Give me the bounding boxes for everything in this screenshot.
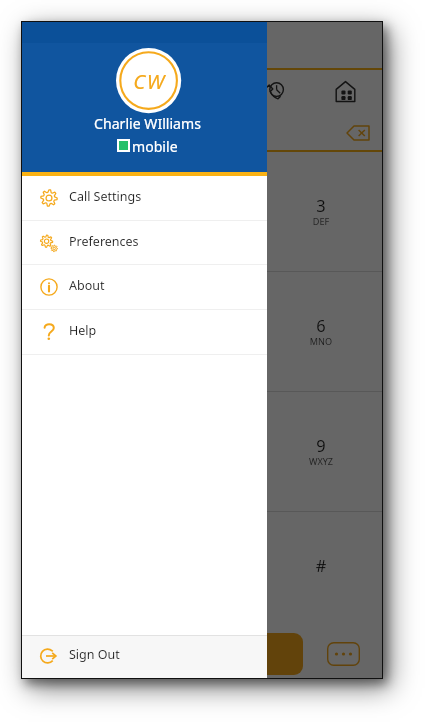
staticText: 4 (22, 314, 142, 336)
staticText: GHI (22, 335, 142, 347)
button[interactable]: Keypad (309, 70, 381, 112)
button[interactable]: Call Settings (22, 175, 267, 220)
staticText: MNO (261, 335, 381, 347)
staticText: Preferences (69, 233, 139, 250)
staticText: 9 (261, 434, 381, 456)
button[interactable]: 4 (22, 271, 142, 391)
staticText: 6 (261, 314, 381, 336)
staticText: Charlie WIlliams (25, 114, 270, 133)
staticText: DEF (261, 215, 381, 227)
staticText: ABC (142, 215, 262, 227)
button[interactable]: Favourites (94, 70, 166, 112)
staticText: Help (69, 322, 97, 339)
staticText: About (69, 277, 105, 294)
button[interactable]: Add contact (44, 642, 77, 666)
button[interactable]: # (261, 511, 381, 631)
button[interactable]: Backspace (340, 121, 376, 144)
staticText: 3 (261, 194, 381, 216)
button[interactable]: 9 (261, 391, 381, 511)
button[interactable]: 2 (142, 151, 262, 271)
staticText: Sign Out (69, 646, 120, 663)
button[interactable]: Help (22, 309, 267, 354)
button[interactable]: Recent calls (238, 70, 310, 112)
staticText: 1 (22, 194, 142, 216)
button[interactable]: Preferences (22, 220, 267, 265)
staticText: # (261, 554, 381, 576)
button[interactable]: Call (100, 633, 303, 675)
button[interactable]: 1 (22, 151, 142, 271)
button[interactable]: 6 (261, 271, 381, 391)
button[interactable]: About (22, 264, 267, 309)
staticText: CW (117, 67, 182, 95)
button[interactable]: Groups (166, 70, 238, 112)
staticText: Call Settings (69, 188, 142, 205)
button[interactable]: Sign Out (22, 636, 267, 678)
staticText: WXYZ (261, 455, 381, 467)
staticText: mobile (132, 137, 178, 153)
button[interactable]: More options (327, 642, 360, 666)
button[interactable]: 3 (261, 151, 381, 271)
